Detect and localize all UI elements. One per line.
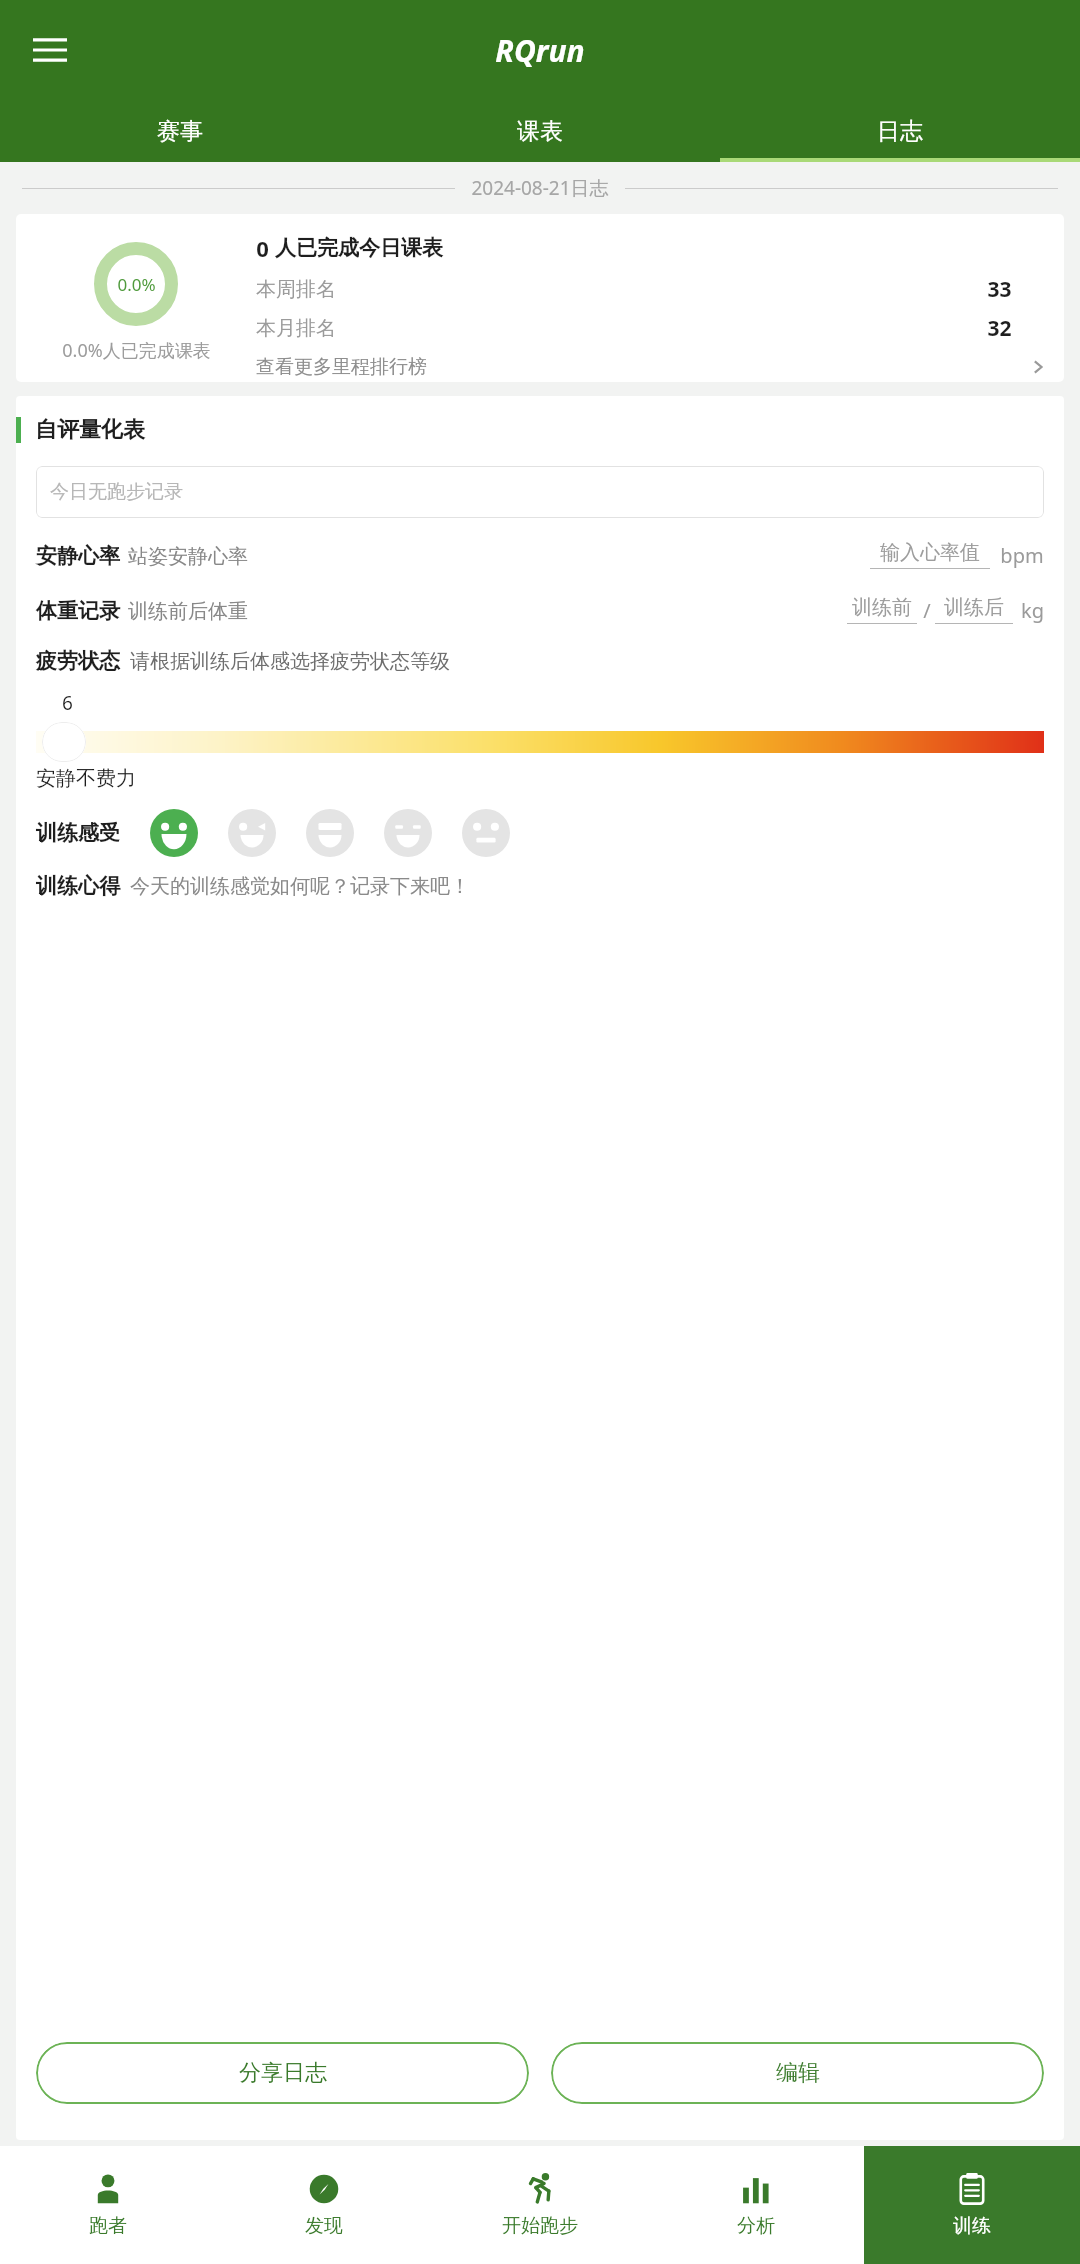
button[interactable]: Feeling 3: [304, 807, 356, 859]
staticText: 跑者: [89, 2214, 127, 2238]
staticText: 分析: [737, 2214, 775, 2238]
staticText: 6: [62, 690, 73, 716]
button[interactable]: 输入心率值: [870, 540, 990, 569]
button[interactable]: 跑者: [0, 2146, 216, 2264]
staticText: 分享日志: [239, 2059, 327, 2087]
staticText: 训练心得: [36, 873, 120, 899]
staticText: 今天的训练感觉如何呢？记录下来吧！: [130, 874, 470, 899]
button[interactable]: 训练前: [847, 595, 917, 624]
staticText: 查看更多里程排行榜: [256, 355, 427, 379]
button[interactable]: 编辑: [551, 2042, 1044, 2104]
staticText: 编辑: [776, 2059, 820, 2087]
staticText: 开始跑步: [502, 2214, 578, 2238]
button[interactable]: 分享日志: [36, 2042, 529, 2104]
staticText: 输入心率值: [880, 540, 980, 565]
staticText: 训练感受: [36, 820, 120, 846]
staticText: 0.0%人已完成课表: [62, 338, 211, 363]
button[interactable]: 赛事: [0, 100, 360, 162]
button[interactable]: Feeling 1: [148, 807, 200, 859]
staticText: 训练后: [944, 595, 1004, 620]
staticText: bpm: [1000, 542, 1044, 569]
button[interactable]: 训练后: [935, 595, 1013, 624]
button[interactable]: 查看更多里程排行榜: [256, 355, 1046, 379]
button[interactable]: 开始跑步: [432, 2146, 648, 2264]
staticText: 2024-08-21日志: [471, 175, 609, 201]
staticText: 本周排名: [256, 277, 336, 302]
staticText: 训练: [953, 2214, 991, 2238]
staticText: 安静不费力: [36, 766, 136, 791]
button[interactable]: Feeling 4: [382, 807, 434, 859]
button[interactable]: 发现: [216, 2146, 432, 2264]
button[interactable]: 训练: [864, 2146, 1080, 2264]
staticText: 训练前后体重: [128, 599, 248, 624]
staticText: kg: [1021, 597, 1044, 624]
staticText: 日志: [877, 117, 923, 146]
staticText: 0: [256, 233, 269, 263]
button[interactable]: 日志: [720, 100, 1080, 162]
staticText: 发现: [305, 2214, 343, 2238]
staticText: 体重记录: [36, 598, 120, 624]
staticText: 疲劳状态: [36, 648, 120, 674]
staticText: 站姿安静心率: [128, 544, 248, 569]
staticText: /: [923, 597, 931, 624]
staticText: 人已完成今日课表: [275, 235, 443, 261]
staticText: 训练前: [852, 595, 912, 620]
staticText: 赛事: [157, 117, 203, 146]
staticText: 安静心率: [36, 543, 120, 569]
button[interactable]: Fatigue level slider: [36, 722, 1044, 762]
staticText: 课表: [517, 117, 563, 146]
button[interactable]: 今日无跑步记录: [36, 466, 1044, 518]
button[interactable]: 分析: [648, 2146, 864, 2264]
staticText: 请根据训练后体感选择疲劳状态等级: [130, 649, 450, 674]
button[interactable]: Feeling 5: [460, 807, 512, 859]
staticText: 32: [987, 314, 1012, 343]
staticText: 本月排名: [256, 316, 336, 341]
button[interactable]: Menu: [22, 22, 78, 78]
staticText: RQrun: [495, 30, 585, 71]
button[interactable]: 课表: [360, 100, 720, 162]
staticText: 今日无跑步记录: [50, 480, 183, 504]
button[interactable]: Feeling 2: [226, 807, 278, 859]
staticText: 33: [987, 275, 1012, 304]
staticText: 自评量化表: [35, 416, 145, 444]
staticText: 0.0%: [117, 273, 156, 296]
